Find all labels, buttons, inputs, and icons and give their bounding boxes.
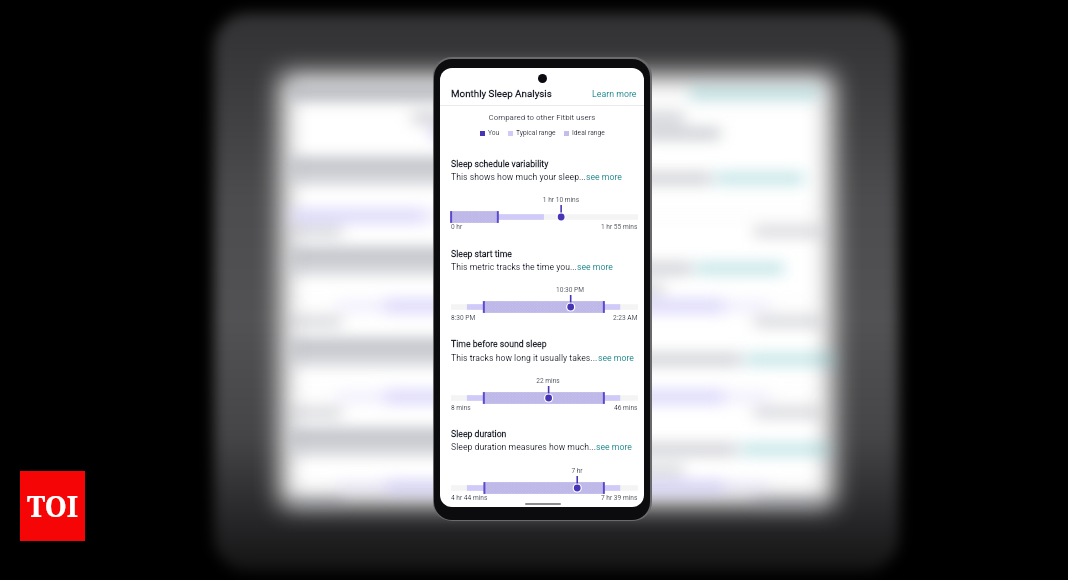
staticText: This shows how much your sleep... [451, 172, 586, 182]
staticText: 22 mins [518, 377, 578, 385]
button[interactable]: Ideal range [564, 129, 605, 137]
staticText: TOI [27, 487, 78, 525]
staticText: Time before sound sleep [451, 339, 547, 349]
button[interactable]: You [480, 129, 500, 137]
staticText: Sleep start time [451, 249, 512, 259]
staticText: 2:23 AM [613, 314, 638, 322]
staticText: 7 hr [547, 467, 607, 475]
button[interactable]: Learn more [592, 89, 637, 99]
button[interactable]: Sleep duration measures how much... [451, 442, 632, 452]
staticText: This tracks how long it usually takes... [451, 353, 598, 363]
staticText: 1 hr 10 mins [531, 196, 591, 204]
staticText: Learn more [592, 89, 637, 99]
staticText: 0 hr [451, 223, 463, 231]
staticText: 1 hr 55 mins [601, 223, 638, 231]
staticText: This metric tracks the time you... [451, 262, 577, 272]
button[interactable]: This metric tracks the time you... [451, 262, 613, 272]
staticText: Sleep schedule variability [451, 159, 549, 169]
staticText: Typical range [516, 129, 556, 137]
staticText: 4 hr 44 mins [451, 494, 488, 502]
staticText: Sleep duration [451, 429, 507, 439]
staticText: 8 mins [451, 404, 471, 412]
staticText: see more [596, 442, 632, 452]
staticText: see more [586, 172, 622, 182]
staticText: You [488, 129, 500, 137]
staticText: 46 mins [614, 404, 638, 412]
staticText: Sleep duration measures how much... [451, 442, 596, 452]
button[interactable]: This tracks how long it usually takes... [451, 353, 634, 363]
staticText: see more [577, 262, 613, 272]
button[interactable]: Times of India [20, 471, 85, 541]
staticText: Compared to other Fitbit users [440, 113, 644, 122]
button[interactable]: Typical range [508, 129, 556, 137]
staticText: Ideal range [572, 129, 605, 137]
staticText: 10:30 PM [540, 286, 600, 294]
staticText: 8:30 PM [451, 314, 476, 322]
staticText: see more [598, 353, 634, 363]
button[interactable]: This shows how much your sleep... [451, 172, 622, 182]
staticText: Monthly Sleep Analysis [451, 88, 552, 99]
staticText: 7 hr 39 mins [601, 494, 638, 502]
